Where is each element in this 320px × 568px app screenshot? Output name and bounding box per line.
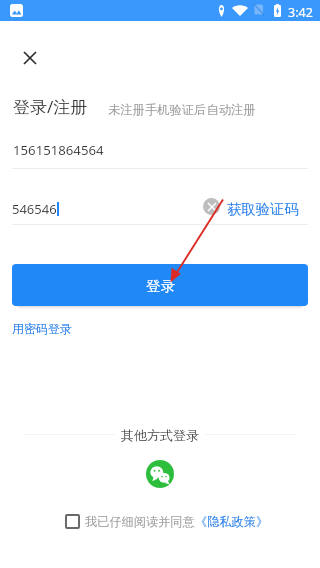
staticText: 其他方式登录 [121,427,199,443]
staticText: 未注册手机验证后自动注册 [108,102,256,117]
button[interactable]: 用密码登录 [12,321,72,336]
button[interactable]: Clear [203,198,220,215]
button[interactable]: WeChat login [146,460,174,488]
button[interactable]: 登录 [12,264,308,306]
button[interactable]: Close [18,46,42,70]
staticText: 登录 [146,277,176,295]
button[interactable]: 《隐私政策》 [195,514,269,529]
staticText: 登录/注册 [13,95,88,118]
staticText: 546546 [12,200,57,218]
staticText: 3:42 [288,4,313,21]
staticText: 我已仔细阅读并同意 [85,514,195,529]
button[interactable]: 获取验证码 [227,200,299,218]
staticText: 156151864564 [13,141,104,159]
button[interactable]: Agree to privacy policy [65,514,80,529]
